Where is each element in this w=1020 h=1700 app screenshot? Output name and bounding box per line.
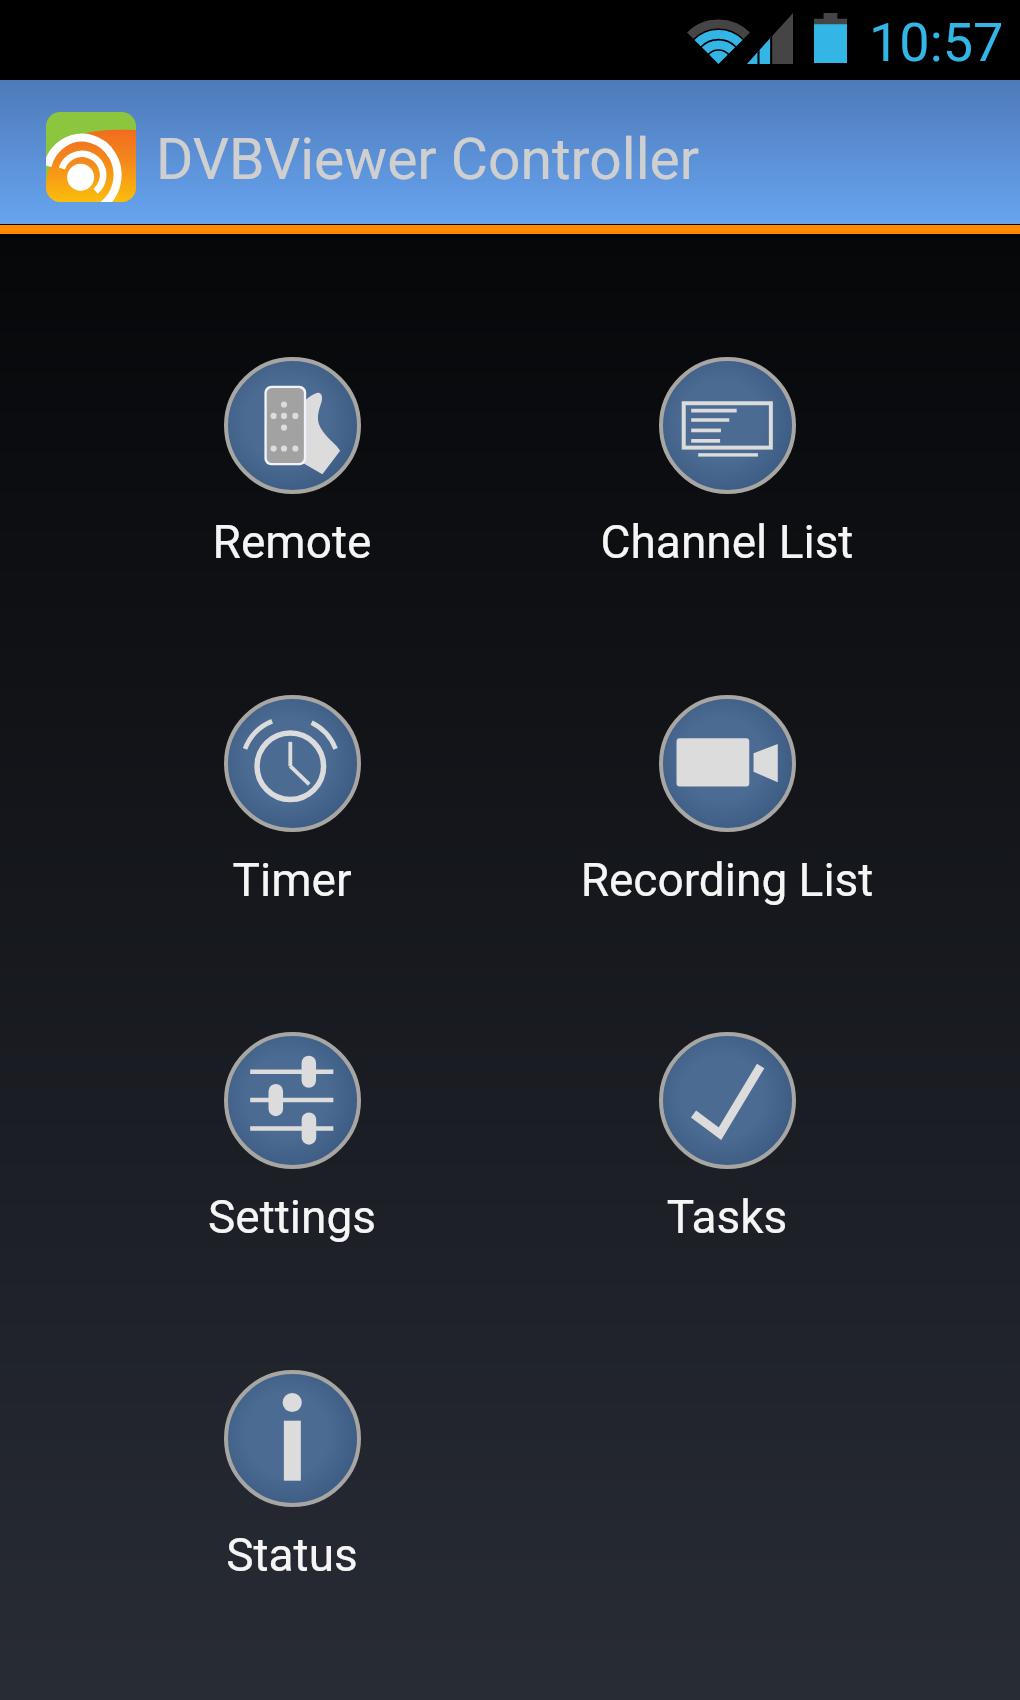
- staticText: Remote: [82, 515, 502, 569]
- staticText: Channel List: [517, 515, 937, 569]
- button[interactable]: Remote: [82, 357, 502, 569]
- staticText: 10:57: [869, 11, 1004, 74]
- button[interactable]: Tasks: [517, 1032, 937, 1244]
- button[interactable]: Status: [82, 1370, 502, 1582]
- button[interactable]: Settings: [82, 1032, 502, 1244]
- staticText: Tasks: [517, 1190, 937, 1244]
- button[interactable]: Recording List: [517, 695, 937, 907]
- button[interactable]: Channel List: [517, 357, 937, 569]
- staticText: Timer: [82, 853, 502, 907]
- staticText: Recording List: [517, 853, 937, 907]
- staticText: DVBViewer Controller: [156, 126, 700, 193]
- button[interactable]: Timer: [82, 695, 502, 907]
- staticText: Status: [82, 1528, 502, 1582]
- staticText: Settings: [82, 1190, 502, 1244]
